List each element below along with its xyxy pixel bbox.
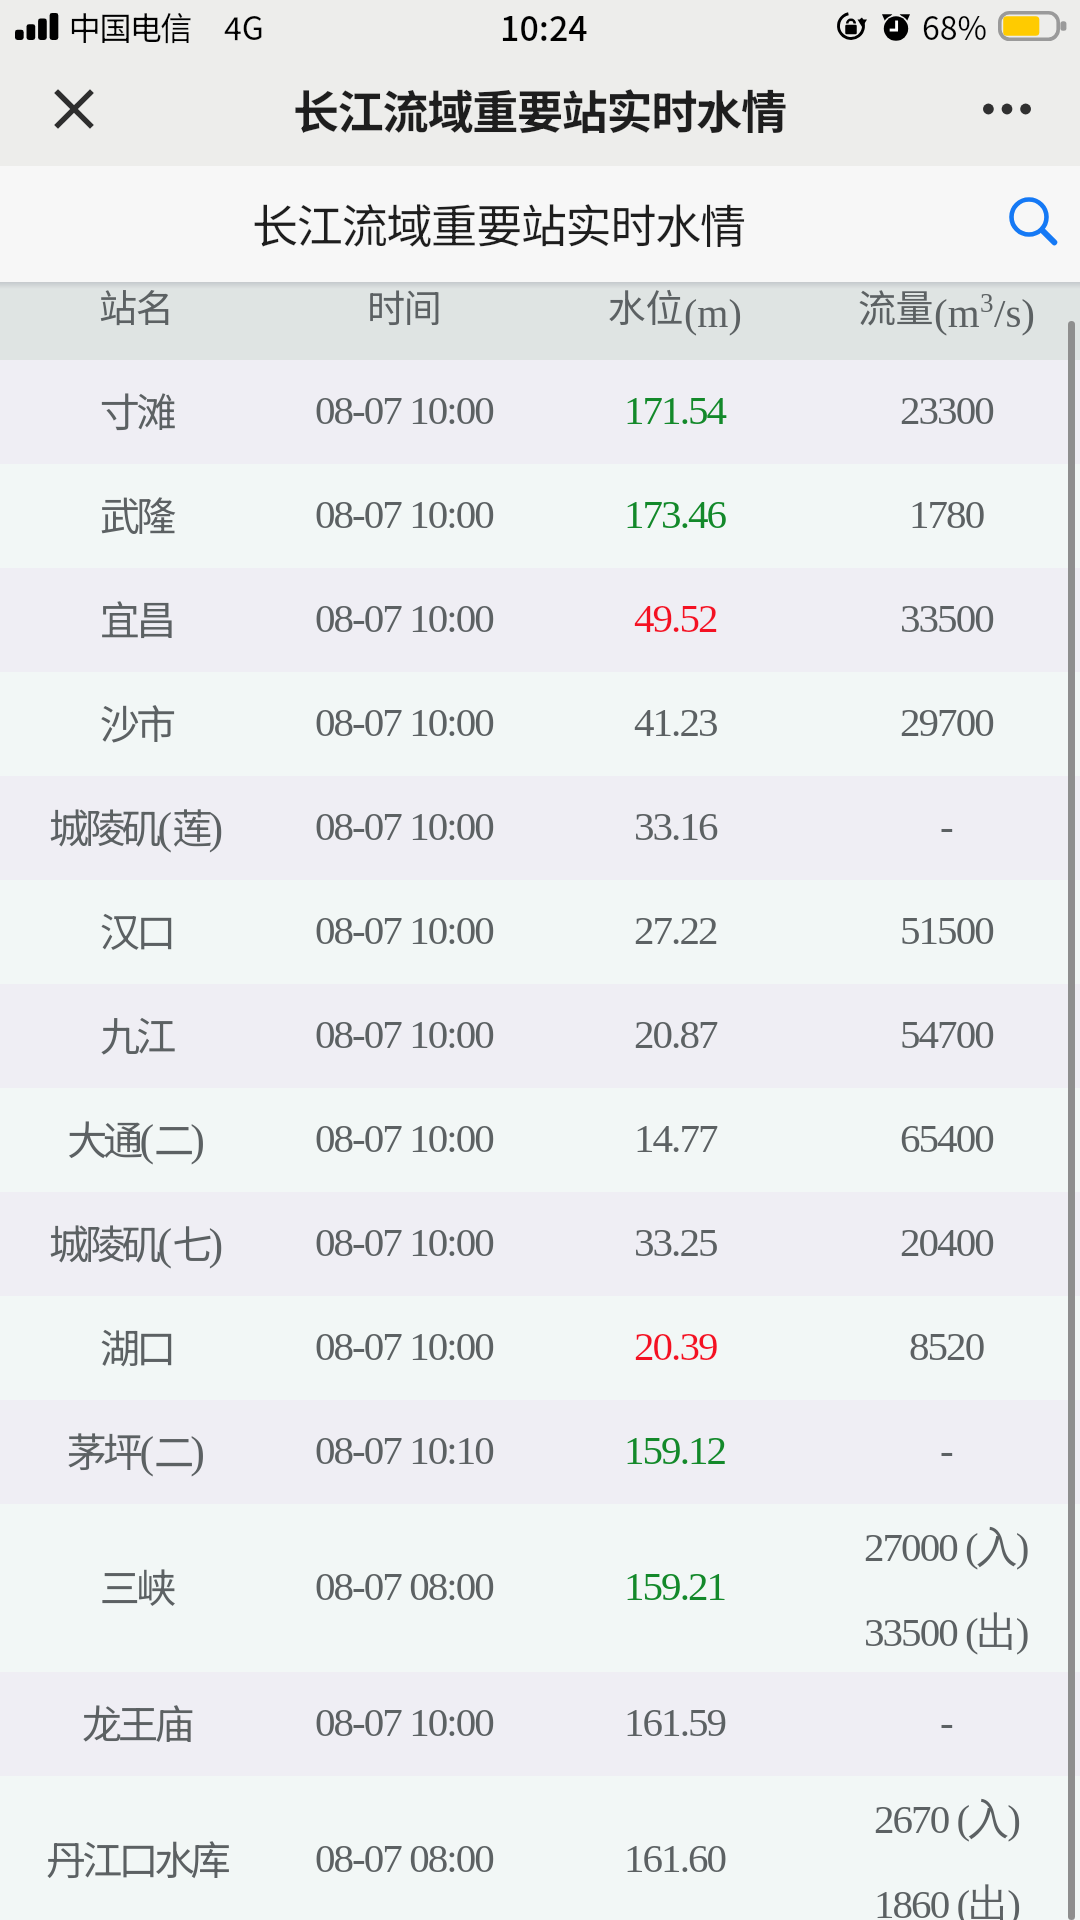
staticText: 33.25 bbox=[634, 1219, 717, 1264]
staticText: 08-07 10:00 bbox=[315, 699, 493, 744]
button[interactable]: 茅坪(二) bbox=[0, 1400, 1080, 1504]
staticText: 08-07 10:00 bbox=[315, 907, 493, 952]
staticText: (m) bbox=[684, 291, 742, 335]
staticText: 161.60 bbox=[624, 1835, 726, 1880]
button[interactable]: 汉口 bbox=[0, 880, 1080, 984]
staticText: 27.22 bbox=[634, 907, 717, 952]
staticText: 08-07 10:00 bbox=[315, 1011, 493, 1056]
staticText: 站名 bbox=[99, 278, 174, 333]
staticText: 33500 bbox=[900, 595, 993, 640]
staticText: 33500 (出) bbox=[864, 1607, 1028, 1659]
staticText: 8520 bbox=[909, 1323, 984, 1368]
staticText: 23300 bbox=[900, 387, 993, 432]
staticText: 08-07 10:00 bbox=[315, 595, 493, 640]
staticText: 08-07 10:00 bbox=[315, 1699, 493, 1744]
staticText: 三峡 bbox=[100, 1557, 173, 1615]
staticText: 城陵矶(莲) bbox=[49, 797, 224, 855]
staticText: 161.59 bbox=[624, 1699, 726, 1744]
staticText: 宜昌 bbox=[100, 589, 173, 647]
staticText: 49.52 bbox=[634, 595, 717, 640]
staticText: 长江流域重要站实时水情 bbox=[252, 190, 745, 257]
button[interactable]: 湖口 bbox=[0, 1296, 1080, 1400]
staticText: 寸滩 bbox=[100, 381, 173, 439]
staticText: 08-07 08:00 bbox=[315, 1563, 493, 1608]
staticText: 20.39 bbox=[634, 1323, 717, 1368]
staticText: 173.46 bbox=[624, 491, 726, 536]
staticText: 长江流域重要站实时水情 bbox=[293, 76, 786, 143]
staticText: 08-07 08:00 bbox=[315, 1835, 493, 1880]
staticText: 武隆 bbox=[100, 485, 173, 543]
staticText: 九江 bbox=[100, 1005, 173, 1063]
staticText: - bbox=[940, 1427, 952, 1472]
staticText: 08-07 10:00 bbox=[315, 387, 493, 432]
staticText: 时间 bbox=[367, 278, 442, 333]
staticText: 29700 bbox=[900, 699, 993, 744]
button[interactable]: Search bbox=[990, 185, 1068, 263]
staticText: 10:24 bbox=[500, 2, 588, 51]
staticText: 汉口 bbox=[100, 901, 173, 959]
staticText: 68% bbox=[922, 3, 987, 49]
staticText: 中国电信 bbox=[69, 3, 192, 49]
staticText: 20400 bbox=[900, 1219, 993, 1264]
staticText: 159.21 bbox=[624, 1563, 726, 1608]
staticText: 丹江口水库 bbox=[46, 1829, 227, 1887]
button[interactable]: 九江 bbox=[0, 984, 1080, 1088]
staticText: 沙市 bbox=[100, 693, 173, 751]
staticText: (m bbox=[934, 290, 980, 335]
staticText: 20.87 bbox=[634, 1011, 717, 1056]
staticText: 08-07 10:00 bbox=[315, 1219, 493, 1264]
button[interactable]: 沙市 bbox=[0, 672, 1080, 776]
button[interactable]: 寸滩 bbox=[0, 360, 1080, 464]
button[interactable]: 城陵矶(七) bbox=[0, 1192, 1080, 1296]
button[interactable]: 丹江口水库 bbox=[0, 1776, 1080, 1920]
staticText: 1860 (出) bbox=[874, 1879, 1019, 1920]
staticText: 3 bbox=[980, 288, 994, 318]
staticText: 08-07 10:00 bbox=[315, 803, 493, 848]
staticText: 湖口 bbox=[100, 1317, 173, 1375]
staticText: 159.12 bbox=[624, 1427, 726, 1472]
staticText: - bbox=[940, 1699, 952, 1744]
staticText: 2670 (入) bbox=[874, 1794, 1019, 1846]
staticText: 51500 bbox=[900, 907, 993, 952]
staticText: 大通(二) bbox=[67, 1109, 205, 1167]
staticText: - bbox=[940, 803, 952, 848]
button[interactable]: 龙王庙 bbox=[0, 1672, 1080, 1776]
staticText: 08-07 10:00 bbox=[315, 1323, 493, 1368]
button[interactable]: 武隆 bbox=[0, 464, 1080, 568]
button[interactable]: 城陵矶(莲) bbox=[0, 776, 1080, 880]
button[interactable]: 三峡 bbox=[0, 1504, 1080, 1672]
staticText: 城陵矶(七) bbox=[49, 1213, 224, 1271]
staticText: 33.16 bbox=[634, 803, 717, 848]
staticText: 41.23 bbox=[634, 699, 717, 744]
staticText: 54700 bbox=[900, 1011, 993, 1056]
staticText: 14.77 bbox=[634, 1115, 717, 1160]
staticText: /s) bbox=[994, 290, 1035, 335]
staticText: 171.54 bbox=[624, 387, 726, 432]
button[interactable]: Close bbox=[35, 70, 113, 148]
button[interactable]: 宜昌 bbox=[0, 568, 1080, 672]
button[interactable]: 大通(二) bbox=[0, 1088, 1080, 1192]
staticText: 08-07 10:10 bbox=[315, 1427, 493, 1472]
staticText: 08-07 10:00 bbox=[315, 1115, 493, 1160]
staticText: 茅坪(二) bbox=[67, 1421, 205, 1479]
staticText: 水位 bbox=[608, 278, 684, 333]
staticText: 1780 bbox=[909, 491, 984, 536]
staticText: 08-07 10:00 bbox=[315, 491, 493, 536]
staticText: 流量 bbox=[858, 278, 934, 333]
staticText: 65400 bbox=[900, 1115, 993, 1160]
button[interactable]: More options bbox=[968, 70, 1046, 148]
staticText: 27000 (入) bbox=[864, 1522, 1028, 1574]
staticText: 4G bbox=[224, 3, 264, 49]
staticText: 龙王庙 bbox=[82, 1693, 191, 1751]
